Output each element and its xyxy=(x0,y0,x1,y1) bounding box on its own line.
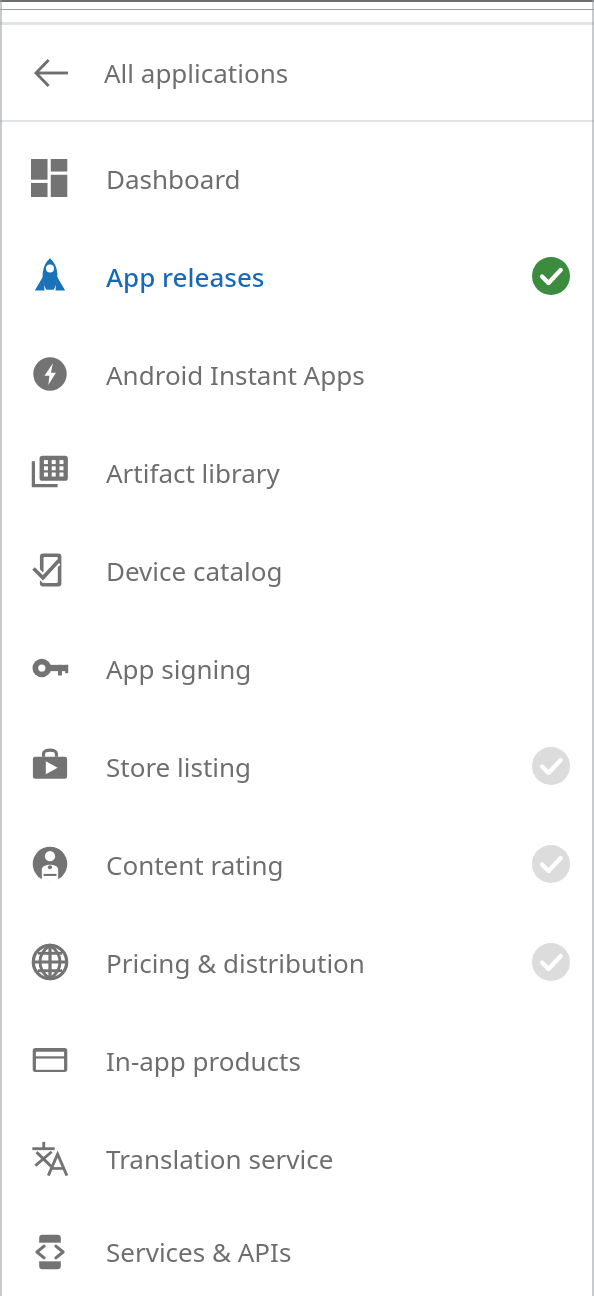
staticText: In-app products xyxy=(106,1043,532,1078)
staticText: Device catalog xyxy=(106,553,532,588)
staticText: All applications xyxy=(104,55,289,90)
button[interactable]: App signing xyxy=(0,619,594,717)
button[interactable]: Back xyxy=(0,25,104,120)
button[interactable]: Artifact library xyxy=(0,423,594,521)
staticText: App signing xyxy=(106,651,532,686)
staticText: Services & APIs xyxy=(106,1234,532,1269)
button[interactable]: Services & APIs xyxy=(0,1207,594,1296)
button[interactable]: App releases xyxy=(0,227,594,325)
button[interactable]: Translation service xyxy=(0,1109,594,1207)
button[interactable]: Pricing & distribution xyxy=(0,913,594,1011)
staticText: Content rating xyxy=(106,847,532,882)
staticText: Dashboard xyxy=(106,161,532,196)
staticText: App releases xyxy=(106,259,532,294)
staticText: Translation service xyxy=(106,1141,532,1176)
staticText: Android Instant Apps xyxy=(106,357,532,392)
staticText: Artifact library xyxy=(106,455,532,490)
button[interactable]: Android Instant Apps xyxy=(0,325,594,423)
button[interactable]: Device catalog xyxy=(0,521,594,619)
button[interactable]: Store listing xyxy=(0,717,594,815)
button[interactable]: Dashboard xyxy=(0,129,594,227)
button[interactable]: Content rating xyxy=(0,815,594,913)
staticText: Store listing xyxy=(106,749,532,784)
staticText: Pricing & distribution xyxy=(106,945,532,980)
button[interactable]: In-app products xyxy=(0,1011,594,1109)
